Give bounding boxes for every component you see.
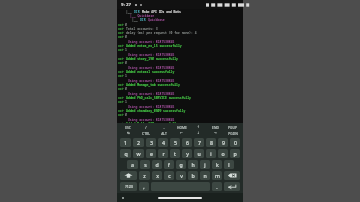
staticText: Added PhD_calc_SERVICE successfully — [126, 96, 191, 100]
button[interactable]: Shift — [120, 171, 137, 180]
button[interactable]: j — [200, 160, 210, 169]
staticText: 2 — [137, 139, 140, 146]
button[interactable]: 4 — [158, 138, 168, 147]
button[interactable]: p — [230, 149, 240, 158]
staticText: - — [163, 125, 165, 129]
staticText: a — [131, 161, 134, 168]
staticText: r — [162, 150, 165, 157]
staticText: Using account: 8187538845 — [128, 105, 175, 109]
button[interactable]: e — [146, 149, 156, 158]
staticText: Using account: 8187538845 — [128, 92, 175, 96]
button[interactable]: c — [164, 171, 174, 180]
button[interactable]: . — [212, 182, 222, 191]
button[interactable]: 8 — [206, 138, 216, 147]
button[interactable]: n — [200, 171, 210, 180]
button[interactable]: b — [188, 171, 198, 180]
button[interactable]: h — [188, 160, 198, 169]
staticText: 6 — [186, 139, 189, 146]
button[interactable]: PGUP — [224, 124, 241, 130]
button[interactable]: 3 — [146, 138, 156, 147]
button[interactable]: y — [182, 149, 192, 158]
button[interactable]: PGDN — [224, 130, 241, 136]
button[interactable]: q — [120, 149, 131, 158]
button[interactable]: 7 — [194, 138, 204, 147]
button[interactable]: f — [164, 160, 174, 169]
staticText: ==> — [118, 100, 124, 104]
button[interactable]: ↹ — [119, 130, 137, 136]
staticText: Using account: 8187538845 — [128, 79, 175, 83]
staticText: 0 — [125, 87, 127, 91]
button[interactable]: l — [224, 160, 234, 169]
button[interactable]: s — [140, 160, 150, 169]
staticText: 0 — [125, 35, 127, 39]
button[interactable]: g — [176, 160, 186, 169]
staticText: |__ — [132, 18, 140, 22]
button[interactable]: i — [206, 149, 216, 158]
button[interactable]: k — [212, 160, 222, 169]
staticText: HOME — [177, 125, 187, 129]
button[interactable]: 5 — [170, 138, 180, 147]
button[interactable]: r — [158, 149, 168, 158]
button[interactable]: 2 — [133, 138, 144, 147]
button[interactable]: z — [139, 171, 150, 180]
button[interactable]: t — [170, 149, 180, 158]
button[interactable]: ?123 — [120, 182, 137, 191]
button[interactable]: a — [127, 160, 138, 169]
button[interactable]: u — [194, 149, 204, 158]
staticText: ==> — [118, 31, 126, 35]
button[interactable]: / — [137, 124, 155, 130]
button[interactable]: 1 — [120, 138, 131, 147]
staticText: ==> — [118, 70, 124, 74]
staticText: l — [228, 161, 230, 168]
button[interactable]: ALT — [155, 130, 173, 136]
staticText: 1 — [124, 139, 127, 146]
button[interactable]: ↓ — [190, 130, 207, 136]
staticText: ↑ — [197, 125, 200, 129]
staticText: w — [136, 150, 141, 157]
staticText: DIR — [140, 18, 148, 22]
button[interactable]: ESC — [119, 124, 137, 130]
button[interactable]: 9 — [218, 138, 228, 147]
button[interactable]: m — [212, 171, 222, 180]
button[interactable]: v — [176, 171, 186, 180]
button[interactable]: d — [152, 160, 162, 169]
staticText: z — [143, 172, 146, 179]
staticText: g — [179, 161, 183, 168]
button[interactable]: , — [139, 182, 149, 191]
button[interactable]: Enter — [224, 182, 240, 191]
button[interactable]: - — [155, 124, 173, 130]
staticText: ==> — [118, 113, 124, 117]
staticText: ==> — [118, 83, 124, 87]
button[interactable]: Backspace — [224, 171, 240, 180]
staticText: b — [191, 172, 195, 179]
staticText: delay (ms) per request (0 for none): 4 — [126, 31, 197, 35]
staticText: q — [124, 150, 128, 157]
button[interactable]: HOME — [173, 124, 190, 130]
button[interactable]: x — [152, 171, 162, 180]
staticText: j — [204, 161, 206, 168]
staticText: Using account: 8187538845 — [128, 66, 175, 70]
button[interactable]: END — [207, 124, 224, 130]
button[interactable]: o — [218, 149, 228, 158]
staticText: u — [197, 150, 201, 157]
staticText: d — [155, 161, 159, 168]
button[interactable]: 6 — [182, 138, 192, 147]
button[interactable]: → — [207, 130, 224, 136]
staticText: Added Dollar130 successfully — [126, 122, 178, 123]
button[interactable]: w — [133, 149, 144, 158]
staticText: ==> — [118, 44, 124, 48]
staticText: 3 — [150, 139, 153, 146]
button[interactable]: 0 — [230, 138, 240, 147]
staticText: y — [186, 150, 189, 157]
button[interactable]: CTRL — [137, 130, 155, 136]
staticText: m — [215, 172, 220, 179]
button[interactable]: ↑ — [190, 124, 207, 130]
staticText: n — [203, 172, 207, 179]
button[interactable]: ← — [173, 130, 190, 136]
staticText: ==> — [118, 23, 124, 27]
staticText: Added Manage_tab successfully — [126, 83, 180, 87]
staticText: e — [150, 150, 153, 157]
staticText: ==> — [118, 61, 124, 65]
staticText: p — [233, 150, 237, 157]
